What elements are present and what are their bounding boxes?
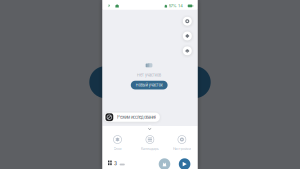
staticText: 57%: [169, 3, 177, 8]
button[interactable]: Account: [159, 158, 170, 169]
button[interactable]: Measure area: [183, 31, 192, 40]
staticText: 14: [178, 3, 183, 8]
button[interactable]: Новый участок: [131, 81, 168, 89]
button[interactable]: Слои: [102, 136, 132, 150]
button[interactable]: Map layers: [183, 46, 192, 55]
staticText: Нет участков: [137, 73, 161, 77]
staticText: Слои: [113, 147, 121, 151]
staticText: Режим исследования: [117, 115, 156, 120]
button[interactable]: Настройки: [167, 136, 197, 150]
button[interactable]: Режим исследования: [104, 113, 160, 122]
button[interactable]: Collapse panel: [146, 125, 153, 132]
staticText: Новый участок: [136, 83, 163, 87]
staticText: Настройки: [173, 147, 191, 151]
staticText: 3: [114, 161, 117, 166]
button[interactable]: Play: [179, 158, 190, 169]
staticText: Календарь: [141, 147, 159, 151]
button[interactable]: Календарь: [135, 136, 165, 150]
button[interactable]: My location: [183, 17, 192, 26]
